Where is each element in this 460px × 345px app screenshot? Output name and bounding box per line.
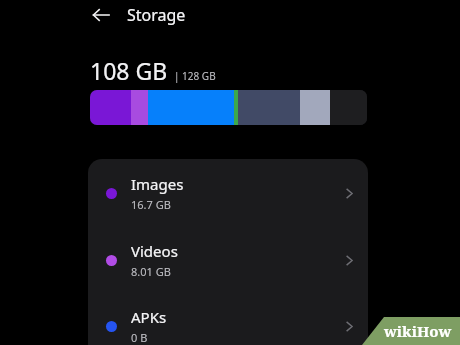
staticText: 108 GB <box>90 55 168 86</box>
staticText: | 128 GB <box>174 69 216 83</box>
staticText: 0 B <box>131 330 148 345</box>
staticText: 16.7 GB <box>131 197 171 212</box>
button[interactable]: Back <box>88 2 114 28</box>
staticText: 8.01 GB <box>131 264 171 279</box>
button[interactable]: APKs <box>88 293 368 345</box>
button[interactable]: Videos <box>88 226 368 293</box>
staticText: Storage <box>127 4 186 26</box>
staticText: Images <box>131 174 184 194</box>
button[interactable]: Images <box>88 159 368 226</box>
staticText: Videos <box>131 241 178 261</box>
staticText: APKs <box>131 307 167 327</box>
staticText: wikiHow <box>384 321 452 341</box>
